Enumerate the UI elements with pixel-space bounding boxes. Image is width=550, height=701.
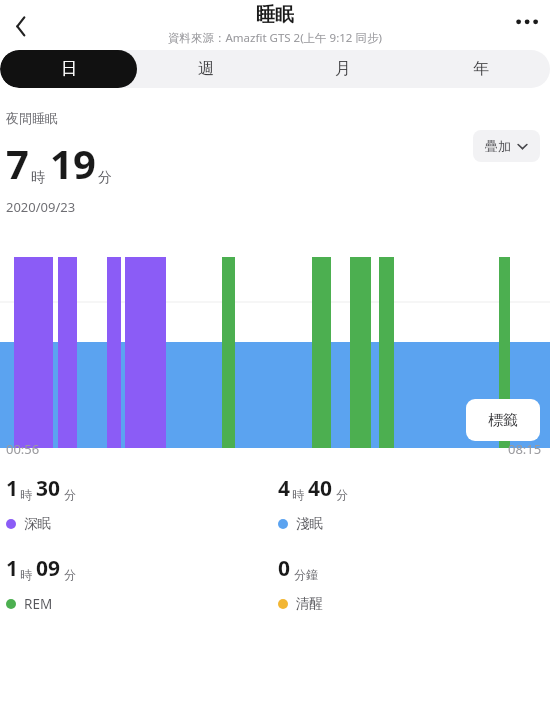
staticText: 分鐘 xyxy=(294,567,318,582)
staticText: 時 xyxy=(20,567,32,582)
staticText: 1 xyxy=(6,554,19,583)
staticText: 時 xyxy=(292,487,304,502)
staticText: 19 xyxy=(50,136,96,190)
button[interactable]: 標籤 xyxy=(466,399,540,441)
button[interactable]: 4 xyxy=(278,474,550,532)
button[interactable]: 1 xyxy=(6,554,278,613)
staticText: 標籤 xyxy=(488,411,518,430)
staticText: 1 xyxy=(6,474,19,503)
button[interactable]: 日 xyxy=(0,50,137,88)
button[interactable]: 疊加 xyxy=(473,130,540,162)
staticText: 年 xyxy=(473,59,489,79)
staticText: 分 xyxy=(64,487,76,502)
staticText: 2020/09/23 xyxy=(6,198,76,216)
staticText: 08:15 xyxy=(508,440,542,458)
button[interactable]: 年 xyxy=(412,50,550,88)
staticText: 30 xyxy=(36,474,61,503)
staticText: 疊加 xyxy=(485,138,511,154)
staticText: 時 xyxy=(20,487,32,502)
staticText: 睡眠 xyxy=(256,3,294,27)
button[interactable]: 週 xyxy=(137,50,274,88)
staticText: 分 xyxy=(64,567,76,582)
staticText: 資料來源：Amazfit GTS 2(上午 9:12 同步) xyxy=(168,30,382,46)
button[interactable]: 0 xyxy=(278,554,550,612)
staticText: 分 xyxy=(336,487,348,502)
staticText: 日 xyxy=(61,59,77,79)
staticText: 月 xyxy=(335,59,351,79)
button[interactable]: Back xyxy=(0,4,40,44)
staticText: REM xyxy=(24,595,53,613)
staticText: 09 xyxy=(36,554,61,583)
button[interactable]: More options xyxy=(506,2,550,46)
staticText: 分 xyxy=(98,169,112,187)
staticText: 00:56 xyxy=(6,440,40,458)
button[interactable]: 1 xyxy=(6,474,278,532)
staticText: 4 xyxy=(278,474,291,503)
staticText: 0 xyxy=(278,554,291,583)
staticText: 時 xyxy=(31,169,45,187)
staticText: 40 xyxy=(308,474,333,503)
staticText: 清醒 xyxy=(296,595,323,612)
staticText: 深眠 xyxy=(24,515,51,532)
staticText: 淺眠 xyxy=(296,515,323,532)
staticText: 週 xyxy=(198,59,214,79)
staticText: 夜間睡眠 xyxy=(6,110,58,126)
button[interactable]: 月 xyxy=(274,50,412,88)
staticText: 7 xyxy=(6,136,29,190)
